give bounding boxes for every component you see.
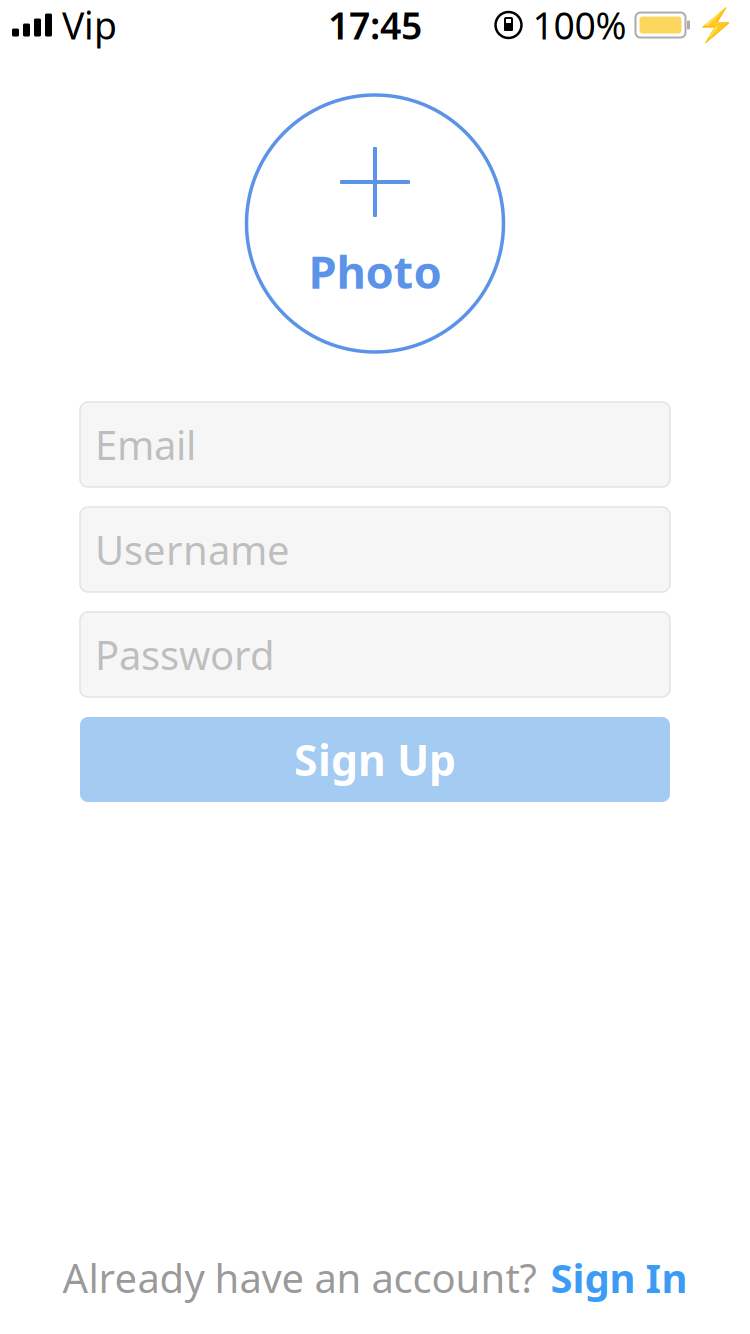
- staticText: 100%: [532, 0, 626, 50]
- staticText: Sign In: [550, 1251, 687, 1304]
- button[interactable]: Sign In: [550, 1251, 687, 1304]
- staticText: Photo: [308, 241, 441, 301]
- staticText: Email: [95, 418, 196, 471]
- staticText: ⚡: [696, 7, 736, 43]
- staticText: 17:45: [328, 0, 422, 50]
- staticText: Username: [95, 523, 290, 576]
- button[interactable]: Password: [80, 612, 670, 697]
- button[interactable]: Username: [80, 507, 670, 592]
- staticText: Already have an account?: [62, 1251, 536, 1304]
- button[interactable]: Email: [80, 402, 670, 487]
- staticText: Password: [95, 628, 275, 681]
- staticText: Sign Up: [294, 731, 456, 788]
- button[interactable]: Sign Up: [80, 717, 670, 802]
- button[interactable]: Add Photo: [246, 95, 503, 352]
- staticText: Vip: [62, 0, 117, 50]
